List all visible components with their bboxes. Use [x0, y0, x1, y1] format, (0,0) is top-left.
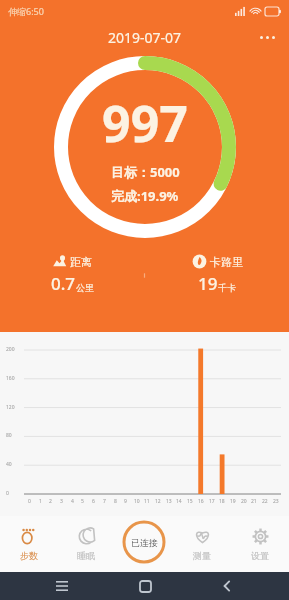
staticText: 目标：5000 [111, 163, 180, 181]
staticText: 6 [92, 498, 95, 505]
staticText: 2019-07-07 [108, 28, 182, 47]
staticText: 18 [219, 498, 225, 505]
staticText: 10 [134, 498, 140, 505]
staticText: 19 [198, 272, 218, 295]
button[interactable]: 卡路里 [145, 252, 289, 297]
staticText: 0 [28, 498, 31, 505]
staticText: 80 [6, 432, 12, 439]
staticText: 卡路里 [210, 255, 243, 269]
staticText: 5 [81, 498, 84, 505]
staticText: 设置 [251, 550, 269, 561]
staticText: 120 [6, 404, 15, 411]
button[interactable]: 设置 [231, 516, 289, 572]
staticText: 15 [187, 498, 193, 505]
staticText: 已连接 [131, 537, 158, 548]
staticText: 7 [103, 498, 106, 505]
button[interactable]: 步数 [0, 516, 57, 572]
button[interactable]: 已连接 [115, 516, 173, 572]
staticText: 睡眠 [77, 550, 95, 561]
button[interactable]: 距离 [0, 252, 144, 297]
staticText: 完成:19.9% [111, 187, 179, 205]
staticText: 40 [6, 461, 12, 468]
staticText: 14 [176, 498, 182, 505]
staticText: 0.7 [51, 272, 76, 295]
button[interactable]: More options [252, 28, 283, 47]
staticText: 16 [198, 498, 204, 505]
staticText: 13 [166, 498, 172, 505]
staticText: 22 [262, 498, 268, 505]
staticText: 12 [155, 498, 161, 505]
staticText: 0 [6, 490, 9, 497]
staticText: 21 [251, 498, 257, 505]
staticText: 19 [230, 498, 236, 505]
staticText: 步数 [20, 550, 38, 561]
staticText: 3 [60, 498, 63, 505]
staticText: 9 [124, 498, 127, 505]
staticText: 23 [273, 498, 279, 505]
button[interactable]: Back [207, 572, 247, 600]
staticText: 11 [144, 498, 150, 505]
staticText: 公里 [76, 282, 94, 293]
staticText: 2 [49, 498, 52, 505]
staticText: 997 [102, 89, 188, 157]
staticText: 160 [6, 375, 15, 382]
staticText: 4 [71, 498, 74, 505]
staticText: 千卡 [218, 282, 236, 293]
staticText: 200 [6, 346, 15, 353]
staticText: 17 [209, 498, 215, 505]
staticText: 8 [114, 498, 117, 505]
staticText: 测量 [193, 550, 211, 561]
button[interactable]: 测量 [173, 516, 231, 572]
button[interactable]: Home [125, 572, 165, 600]
button[interactable]: 睡眠 [57, 516, 115, 572]
staticText: 20 [241, 498, 247, 505]
staticText: 1 [39, 498, 42, 505]
button[interactable]: Recent apps [42, 572, 82, 600]
staticText: 伸缩6:50 [8, 5, 44, 17]
staticText: 距离 [70, 255, 92, 269]
